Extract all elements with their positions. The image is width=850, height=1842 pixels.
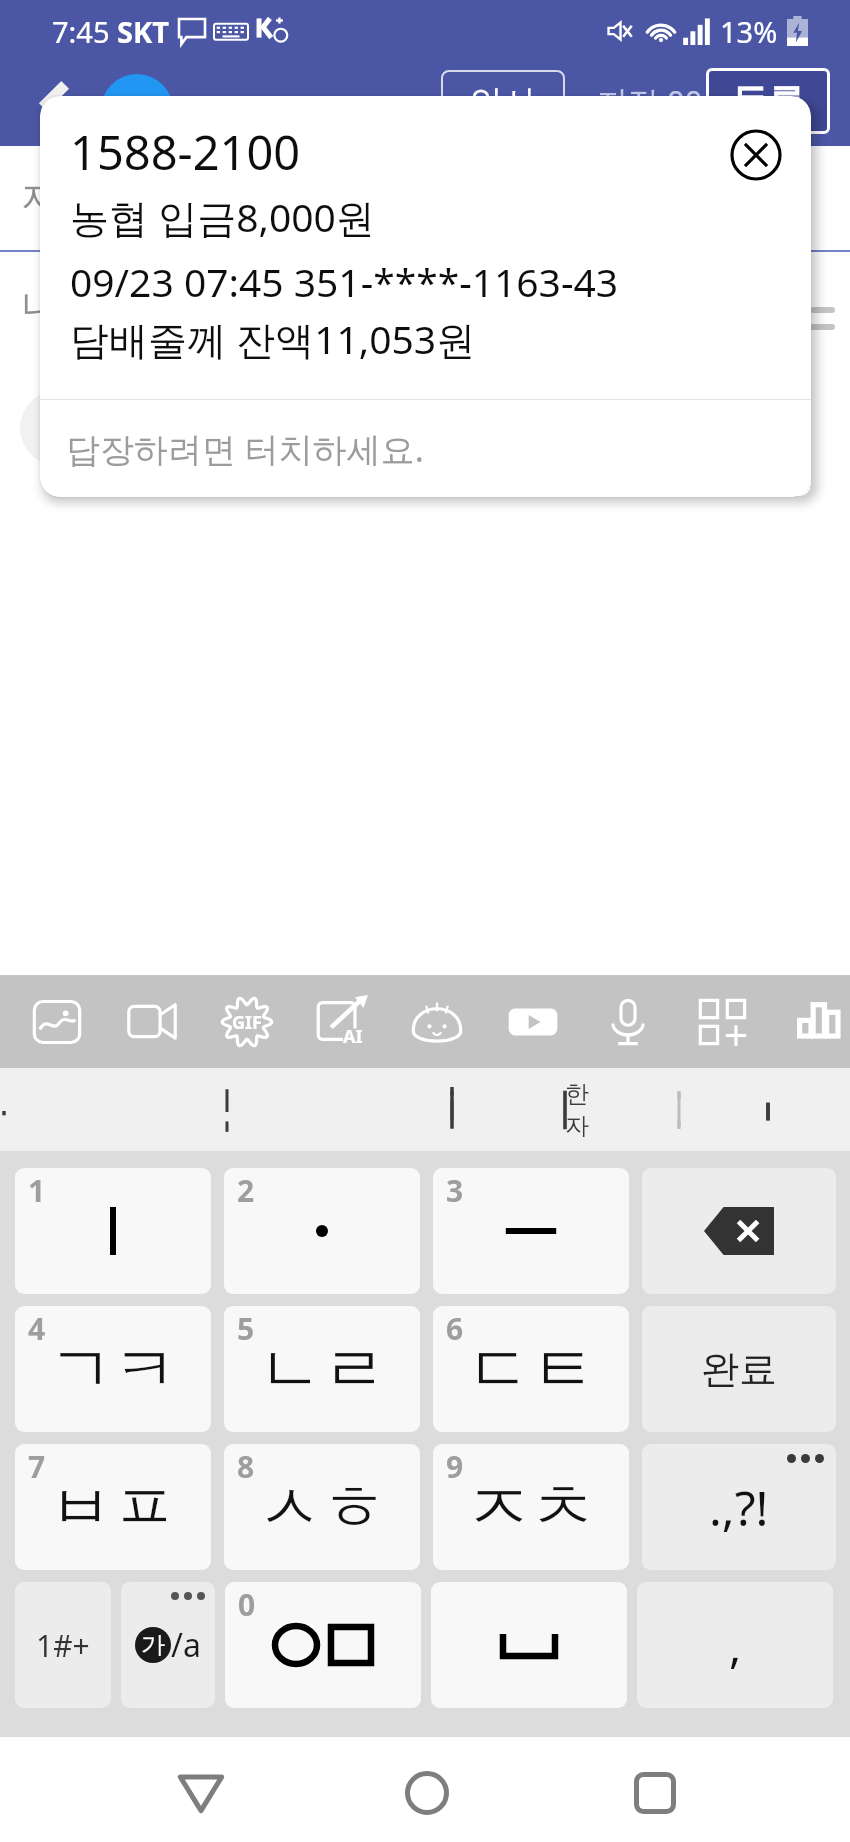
- button[interactable]: 7: [15, 1444, 211, 1570]
- staticText: 등록: [732, 79, 804, 124]
- button[interactable]: Recents: [610, 1748, 700, 1838]
- staticText: 2: [237, 1170, 255, 1211]
- button[interactable]: GIF: [200, 975, 294, 1068]
- button[interactable]: Home: [382, 1748, 472, 1838]
- button[interactable]: Voice: [581, 975, 675, 1068]
- staticText: 저: [21, 175, 57, 220]
- staticText: 농협 입금8,000원: [70, 190, 375, 243]
- staticText: 8: [237, 1446, 255, 1487]
- button[interactable]: AI draw: [295, 975, 389, 1068]
- staticText: 5: [237, 1308, 255, 1349]
- staticText: 1: [28, 1170, 46, 1211]
- button[interactable]: Apps: [676, 975, 770, 1068]
- staticText: 답장하려면 터치하세요.: [66, 426, 424, 472]
- button[interactable]: 2: [224, 1168, 420, 1294]
- button[interactable]: 완료: [642, 1306, 836, 1432]
- staticText: ㄱㅋ: [49, 1329, 177, 1410]
- staticText: 6: [446, 1308, 464, 1349]
- button[interactable]: Photo: [10, 975, 104, 1068]
- staticText: 13%: [720, 12, 778, 51]
- staticText: /a: [171, 1623, 201, 1667]
- staticText: ㄴㄹ: [258, 1329, 386, 1410]
- button[interactable]: .,?!: [642, 1444, 836, 1570]
- staticText: 가: [141, 1630, 165, 1660]
- staticText: 입금: [110, 93, 164, 127]
- button[interactable]: 0: [225, 1582, 421, 1708]
- button[interactable]: [642, 1168, 836, 1294]
- staticText: ㅂㅍ: [49, 1467, 177, 1548]
- staticText: 0: [238, 1584, 256, 1625]
- staticText: ㅈㅊ: [467, 1467, 595, 1548]
- staticText: GIF: [232, 1010, 262, 1035]
- staticText: 완료: [701, 1345, 777, 1393]
- staticText: AI: [343, 1024, 363, 1049]
- staticText: 9: [446, 1446, 464, 1487]
- button[interactable]: 8: [224, 1444, 420, 1570]
- staticText: ,: [729, 1614, 742, 1677]
- staticText: 인사: [469, 81, 537, 124]
- button[interactable]: ,: [637, 1582, 833, 1708]
- button[interactable]: Language: [121, 1582, 215, 1708]
- button[interactable]: Back: [156, 1748, 246, 1838]
- staticText: 니: [21, 283, 57, 328]
- staticText: ㄷㅌ: [467, 1329, 595, 1410]
- staticText: 7:45: [52, 12, 110, 51]
- button[interactable]: 3: [433, 1168, 629, 1294]
- button[interactable]: 9: [433, 1444, 629, 1570]
- staticText: 09/23 07:45 351-****-1163-43: [70, 255, 619, 308]
- staticText: 지점 00: [597, 80, 703, 122]
- button[interactable]: 6: [433, 1306, 629, 1432]
- staticText: .,?!: [709, 1475, 769, 1540]
- button[interactable]: 1: [15, 1168, 211, 1294]
- button[interactable]: Poll: [771, 975, 850, 1068]
- button[interactable]: Video: [105, 975, 199, 1068]
- staticText: 7: [28, 1446, 46, 1487]
- button[interactable]: 5: [224, 1306, 420, 1432]
- button[interactable]: 4: [15, 1306, 211, 1432]
- button[interactable]: 1588-2100: [40, 96, 811, 497]
- staticText: 3: [446, 1170, 464, 1211]
- staticText: 1588-2100: [70, 120, 301, 184]
- button[interactable]: 1#+: [15, 1582, 111, 1708]
- staticText: 담배줄께 잔액11,053원: [70, 312, 476, 365]
- button[interactable]: [431, 1582, 627, 1708]
- staticText: 1#+: [36, 1625, 90, 1666]
- staticText: ㅅㅎ: [258, 1467, 386, 1548]
- button[interactable]: Sticker: [390, 975, 484, 1068]
- staticText: 4: [28, 1308, 46, 1349]
- button[interactable]: Close: [721, 120, 791, 190]
- button[interactable]: YouTube: [486, 975, 580, 1068]
- staticText: SKT: [117, 12, 169, 51]
